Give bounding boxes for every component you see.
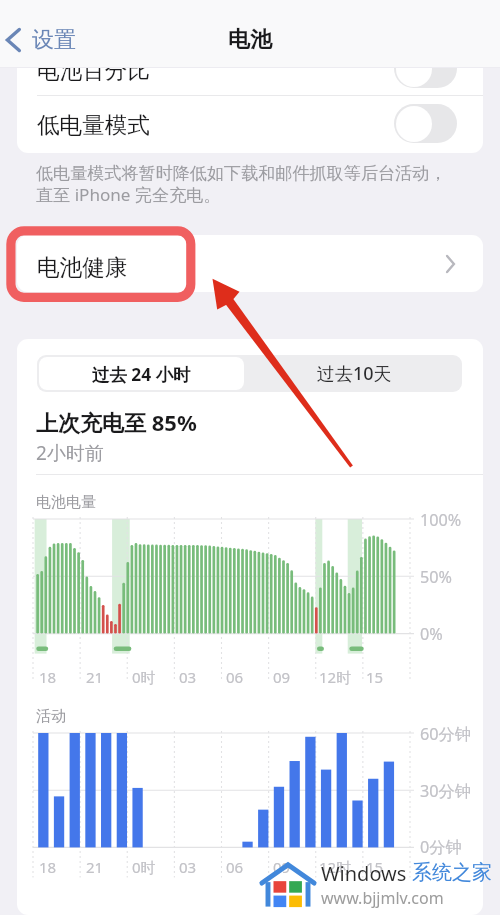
- button[interactable]: 过去 24 小时: [39, 357, 244, 390]
- staticText: 0时: [132, 857, 156, 877]
- staticText: 15: [366, 667, 384, 687]
- staticText: 09: [273, 857, 291, 877]
- button[interactable]: 设置: [6, 26, 76, 54]
- staticText: 设置: [32, 26, 76, 54]
- staticText: 过去10天: [317, 361, 392, 386]
- staticText: 系统之家: [412, 860, 492, 885]
- button[interactable]: 电池百分比: [17, 40, 483, 96]
- staticText: 21: [86, 857, 104, 877]
- button[interactable]: 过去10天: [246, 355, 462, 392]
- staticText: 电池健康: [37, 253, 128, 281]
- staticText: 低电量模式: [37, 111, 150, 139]
- staticText: 电池百分比: [37, 56, 150, 84]
- staticText: www.bjjmlv.com: [321, 887, 444, 909]
- staticText: 18: [39, 857, 57, 877]
- staticText: 06: [226, 667, 244, 687]
- staticText: 100%: [420, 509, 462, 531]
- staticText: 0分钟: [420, 836, 462, 858]
- staticText: 过去 24 小时: [92, 362, 191, 386]
- staticText: 2小时前: [36, 440, 104, 466]
- staticText: 60分钟: [420, 723, 471, 745]
- staticText: 50%: [420, 566, 452, 588]
- staticText: 0时: [132, 667, 156, 687]
- staticText: 03: [179, 857, 197, 877]
- button[interactable]: 低电量模式: [17, 95, 483, 151]
- staticText: 电池电量: [36, 493, 96, 512]
- staticText: 03: [179, 667, 197, 687]
- staticText: 0%: [420, 623, 443, 645]
- staticText: Windows: [321, 860, 412, 887]
- staticText: 15: [366, 857, 384, 877]
- staticText: 12时: [319, 857, 352, 877]
- staticText: 30分钟: [420, 780, 471, 802]
- staticText: 21: [86, 667, 104, 687]
- staticText: 09: [273, 667, 291, 687]
- staticText: 12时: [319, 667, 352, 687]
- staticText: 电池: [228, 26, 272, 54]
- button[interactable]: 电池健康: [17, 235, 483, 292]
- staticText: 活动: [36, 707, 66, 726]
- staticText: 低电量模式将暂时降低如下载和邮件抓取等后台活动， 直至 iPhone 完全充电。: [36, 163, 447, 207]
- staticText: 18: [39, 667, 57, 687]
- staticText: 06: [226, 857, 244, 877]
- staticText: 上次充电至 85%: [36, 407, 197, 437]
